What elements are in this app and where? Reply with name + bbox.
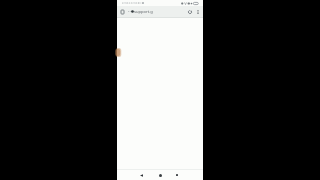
button[interactable]: Recent apps <box>173 171 181 179</box>
button[interactable]: Home <box>156 171 164 179</box>
button[interactable]: More options <box>194 8 202 16</box>
button[interactable]: Switch tabs <box>118 8 126 16</box>
button[interactable]: Back <box>137 171 145 179</box>
staticText: support.g <box>134 9 153 15</box>
button[interactable]: Reload page <box>186 8 194 16</box>
